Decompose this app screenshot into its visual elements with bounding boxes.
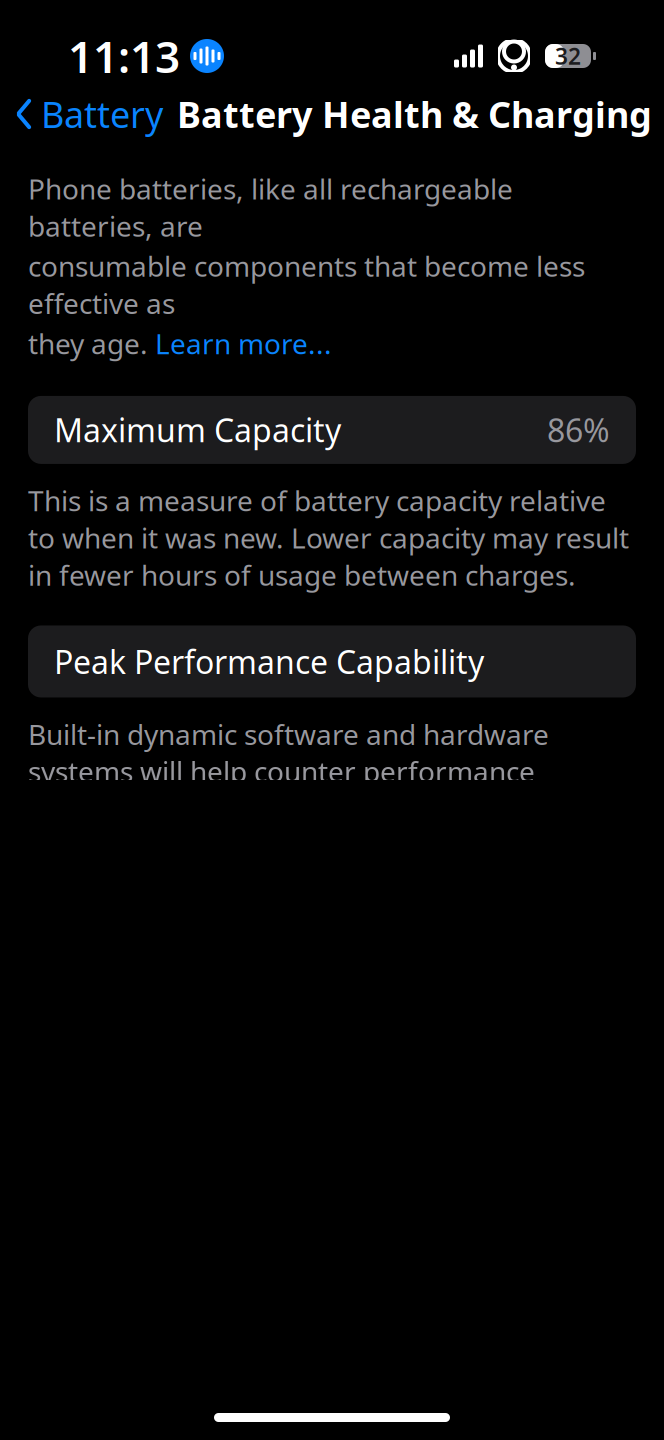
staticText: Phone batteries, like all rechargeable b… bbox=[28, 170, 513, 244]
staticText: Peak Performance Capability bbox=[54, 640, 484, 683]
button[interactable]: Maximum Capacity bbox=[28, 396, 636, 464]
staticText: Built-in dynamic software and hardware s… bbox=[28, 715, 598, 864]
staticText: Battery Health & Charging bbox=[177, 90, 652, 138]
button[interactable]: Peak Performance Capability bbox=[28, 625, 636, 697]
staticText: 32 bbox=[555, 41, 581, 71]
staticText: Learn more... bbox=[155, 325, 332, 362]
staticText: consumable components that become less e… bbox=[28, 247, 585, 322]
staticText: Maximum Capacity bbox=[54, 409, 341, 451]
staticText: This is a measure of battery capacity re… bbox=[28, 482, 629, 593]
button[interactable]: Battery bbox=[0, 82, 163, 146]
staticText: 11:13 bbox=[68, 27, 180, 85]
staticText: Battery bbox=[41, 90, 163, 138]
staticText: they age. bbox=[28, 325, 155, 362]
button[interactable]: Learn more... bbox=[155, 325, 332, 362]
staticText: 86% bbox=[547, 409, 610, 451]
